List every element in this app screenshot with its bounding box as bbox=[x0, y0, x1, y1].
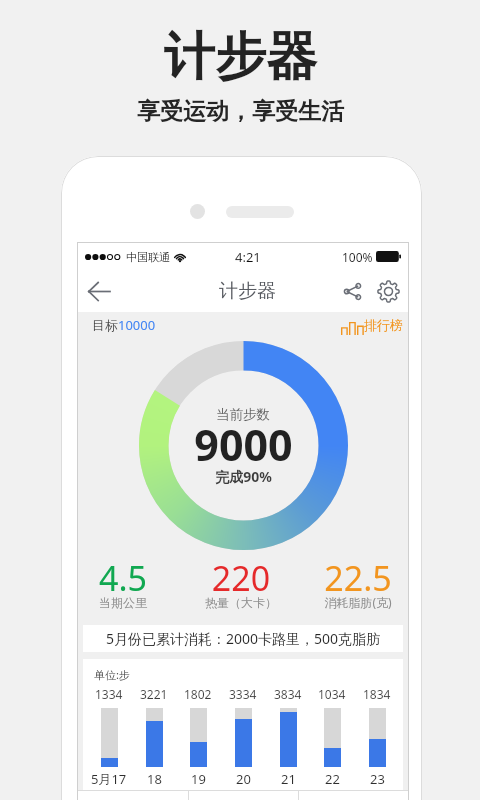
staticText: 3221 bbox=[140, 686, 168, 702]
button[interactable]: 5月份已累计消耗：2000卡路里，500克脂肪 bbox=[83, 625, 403, 652]
staticText: 当期公里 bbox=[68, 595, 178, 610]
staticText: 22.5 bbox=[303, 555, 413, 601]
staticText: 10000 bbox=[118, 316, 156, 334]
staticText: 9000 bbox=[194, 415, 293, 474]
button[interactable]: Back bbox=[78, 270, 120, 312]
staticText: 5月份已累计消耗：2000卡路里，500克脂肪 bbox=[106, 629, 381, 648]
button[interactable]: 22.5 bbox=[303, 553, 413, 612]
button[interactable]: 3834 bbox=[266, 686, 310, 788]
staticText: 100% bbox=[342, 249, 373, 265]
button[interactable]: 1802 bbox=[176, 686, 220, 788]
button[interactable]: 3221 bbox=[132, 686, 176, 788]
staticText: 1834 bbox=[363, 686, 391, 702]
staticText: 1034 bbox=[318, 686, 346, 702]
button[interactable]: 1334 bbox=[87, 686, 131, 788]
button[interactable]: 1834 bbox=[355, 686, 399, 788]
staticText: 消耗脂肪(克) bbox=[303, 594, 413, 610]
staticText: 22 bbox=[325, 770, 340, 788]
staticText: 3334 bbox=[229, 686, 257, 702]
staticText: 计步器 bbox=[219, 279, 276, 303]
staticText: 3834 bbox=[274, 686, 302, 702]
staticText: 21 bbox=[281, 770, 296, 788]
button[interactable]: 排行榜 bbox=[341, 317, 403, 333]
button[interactable]: 目标 bbox=[92, 316, 156, 334]
staticText: 19 bbox=[191, 770, 206, 788]
button[interactable] bbox=[299, 790, 408, 800]
button[interactable]: 1034 bbox=[310, 686, 354, 788]
staticText: 1334 bbox=[95, 686, 123, 702]
staticText: 单位:步 bbox=[94, 667, 130, 682]
staticText: 中国联通 bbox=[126, 250, 170, 264]
staticText: 热量（大卡） bbox=[186, 595, 296, 610]
button[interactable]: Share bbox=[334, 270, 370, 312]
button[interactable] bbox=[189, 790, 298, 800]
staticText: 220 bbox=[186, 555, 296, 601]
button[interactable]: Settings bbox=[370, 270, 406, 312]
staticText: 当前步数 bbox=[216, 406, 270, 423]
staticText: 4:21 bbox=[235, 248, 261, 266]
staticText: 完成90% bbox=[215, 467, 272, 486]
staticText: 5月17 bbox=[91, 770, 127, 788]
staticText: 1802 bbox=[184, 686, 212, 702]
staticText: 18 bbox=[147, 770, 162, 788]
staticText: 享受运动，享受生活 bbox=[137, 97, 344, 126]
staticText: 排行榜 bbox=[364, 317, 403, 333]
staticText: 计步器 bbox=[164, 25, 317, 89]
button[interactable]: 220 bbox=[186, 553, 296, 612]
staticText: 4.5 bbox=[68, 555, 178, 601]
staticText: 目标 bbox=[92, 317, 118, 333]
button[interactable]: 3334 bbox=[221, 686, 265, 788]
staticText: 23 bbox=[370, 770, 385, 788]
button[interactable] bbox=[78, 790, 188, 800]
button[interactable]: 4.5 bbox=[68, 553, 178, 612]
staticText: 20 bbox=[236, 770, 251, 788]
